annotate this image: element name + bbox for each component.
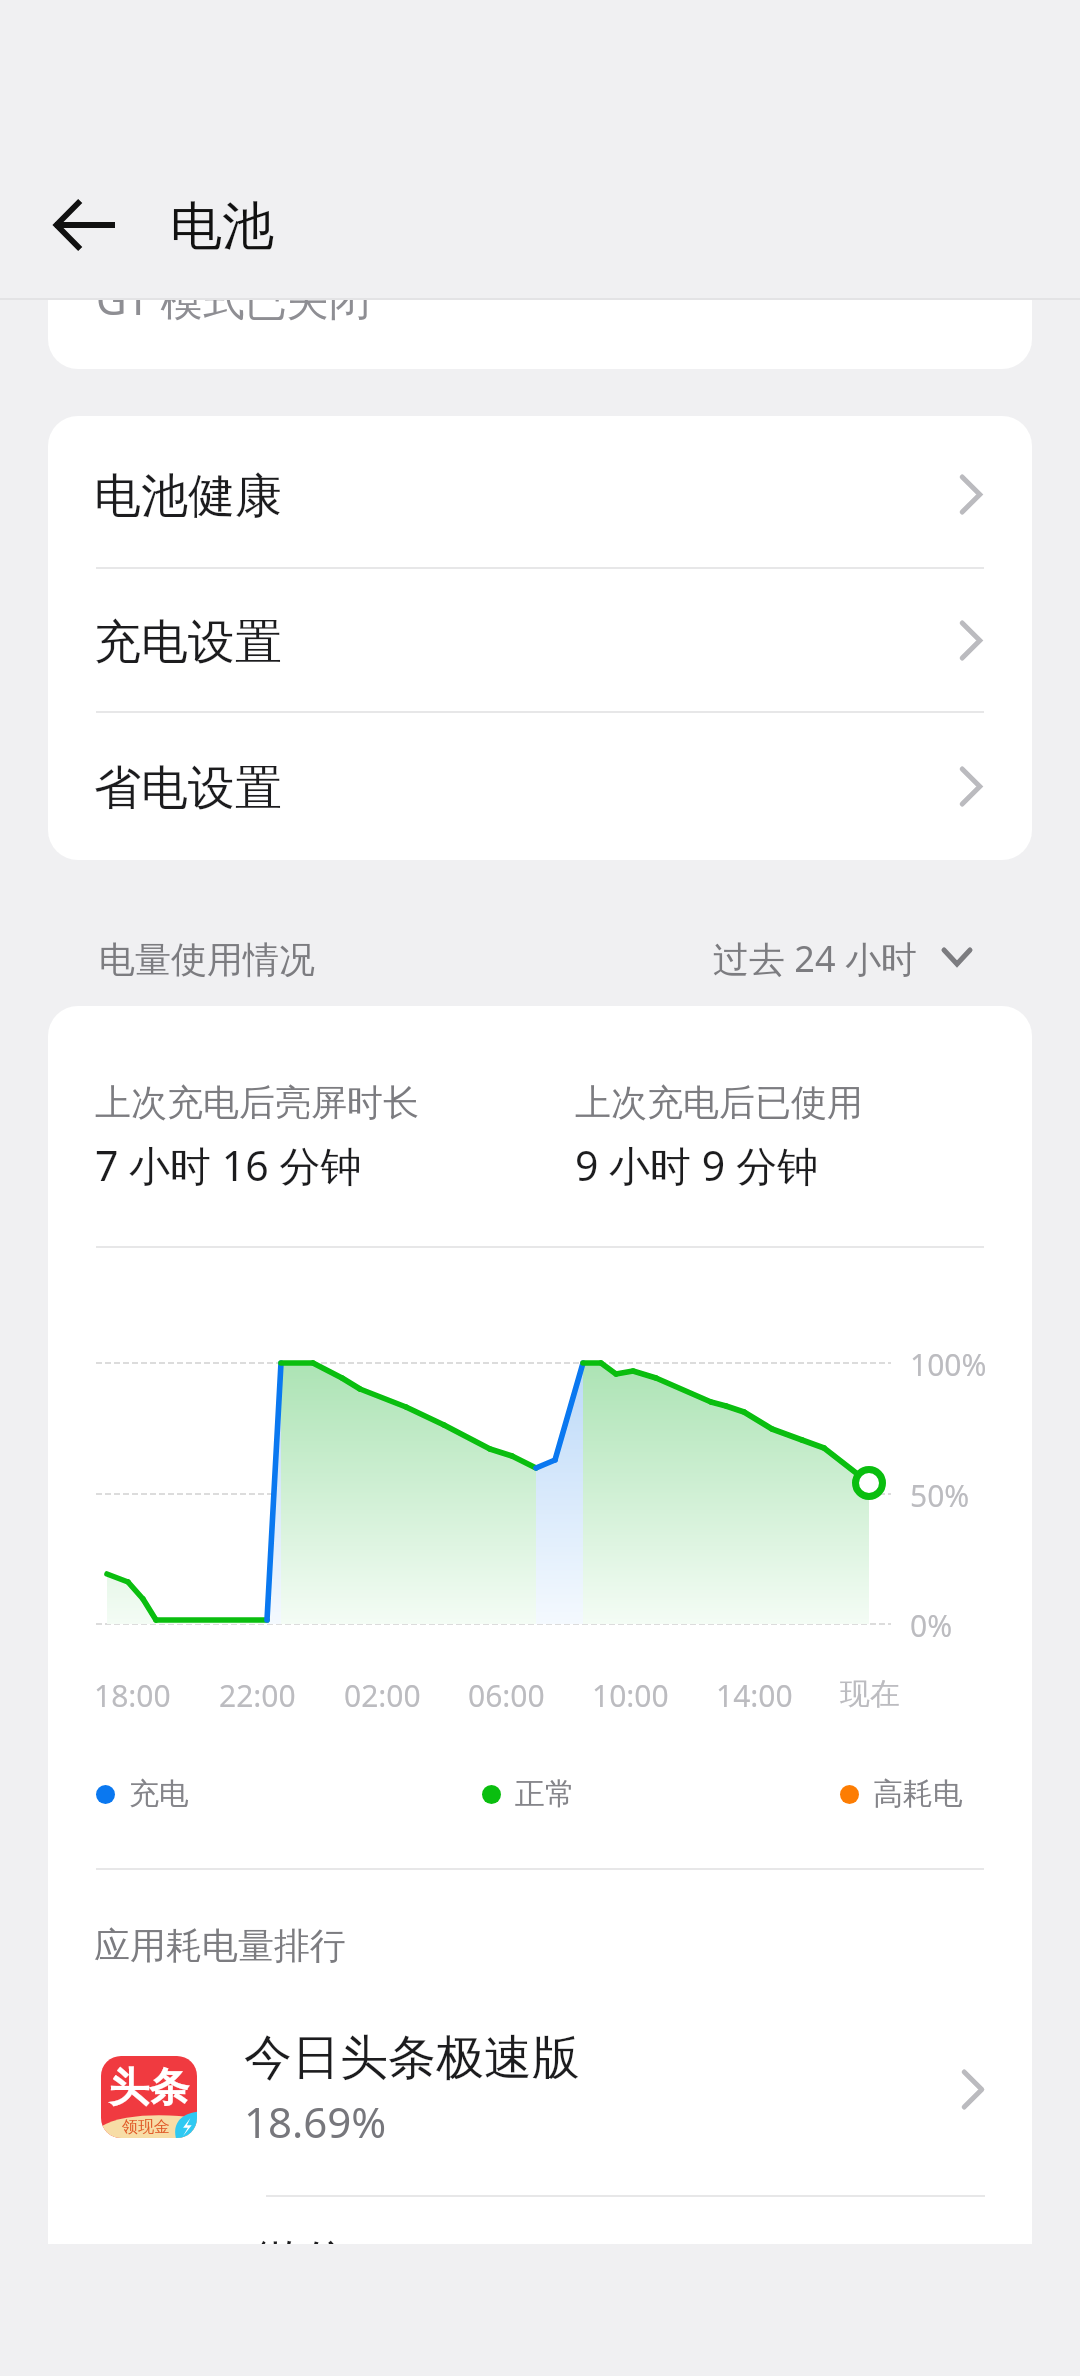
button[interactable]: Back bbox=[12, 153, 156, 297]
button[interactable]: 充电设置 bbox=[48, 569, 1032, 713]
staticText: 电池健康 bbox=[94, 467, 282, 526]
staticText: 现在 bbox=[840, 1675, 900, 1713]
staticText: 应用耗电量排行 bbox=[94, 1923, 346, 1968]
staticText: 上次充电后亮屏时长 bbox=[95, 1080, 419, 1125]
button[interactable]: 高耗电 bbox=[840, 1775, 963, 1813]
button[interactable]: 正常 bbox=[482, 1775, 575, 1813]
staticText: 10:00 bbox=[592, 1675, 669, 1716]
staticText: 今日头条极速版 bbox=[244, 2028, 580, 2088]
staticText: 9 小时 9 分钟 bbox=[575, 1137, 818, 1193]
staticText: 18:00 bbox=[94, 1675, 171, 1716]
staticText: 省电设置 bbox=[94, 759, 282, 818]
staticText: 充电 bbox=[129, 1775, 189, 1813]
staticText: GT 模式已关闭 bbox=[96, 300, 371, 327]
button[interactable]: 电池健康 bbox=[48, 416, 1032, 569]
staticText: 18.69% bbox=[244, 2093, 387, 2150]
staticText: 头条 bbox=[109, 2062, 189, 2112]
button[interactable]: 头条 bbox=[48, 2028, 1032, 2150]
staticText: 02:00 bbox=[344, 1675, 421, 1716]
button[interactable]: 省电设置 bbox=[48, 713, 1032, 860]
staticText: 过去 24 小时 bbox=[713, 934, 917, 983]
staticText: 电池 bbox=[170, 194, 274, 260]
staticText: 50% bbox=[910, 1475, 970, 1516]
staticText: 14:00 bbox=[716, 1675, 793, 1716]
staticText: 正常 bbox=[515, 1775, 575, 1813]
staticText: 0% bbox=[910, 1605, 953, 1646]
button[interactable]: 过去 24 小时 bbox=[707, 930, 976, 987]
staticText: 06:00 bbox=[468, 1675, 545, 1716]
staticText: 微信 bbox=[254, 2233, 350, 2244]
staticText: 上次充电后已使用 bbox=[575, 1080, 863, 1125]
staticText: 100% bbox=[910, 1344, 987, 1385]
staticText: 领现金 bbox=[122, 2117, 170, 2137]
staticText: 高耗电 bbox=[873, 1775, 963, 1813]
staticText: 7 小时 16 分钟 bbox=[95, 1137, 362, 1193]
staticText: 22:00 bbox=[219, 1675, 296, 1716]
button[interactable]: 充电 bbox=[96, 1775, 189, 1813]
staticText: 电量使用情况 bbox=[99, 937, 315, 982]
staticText: 充电设置 bbox=[94, 613, 282, 672]
